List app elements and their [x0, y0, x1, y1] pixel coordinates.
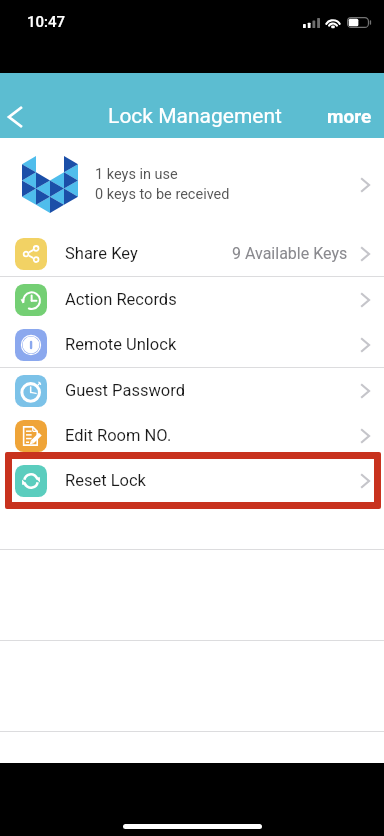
staticText: Action Records	[65, 290, 177, 309]
button[interactable]: 1 keys in use	[0, 138, 384, 231]
button[interactable]: Remote Unlock	[0, 322, 384, 367]
button[interactable]: Share Key	[0, 231, 384, 276]
staticText: Guest Password	[65, 381, 185, 400]
staticText: more	[327, 105, 372, 127]
button[interactable]: Back	[0, 94, 36, 138]
button[interactable]: more	[311, 94, 384, 138]
staticText: 0 keys to be received	[95, 186, 230, 203]
staticText: Lock Management	[108, 104, 282, 129]
staticText: Remote Unlock	[65, 335, 177, 354]
staticText: 10:47	[27, 13, 66, 31]
staticText: 9 Available Keys	[232, 244, 348, 263]
button[interactable]: Reset Lock	[0, 458, 384, 503]
staticText: Reset Lock	[65, 471, 146, 490]
staticText: Edit Room NO.	[65, 426, 172, 445]
button[interactable]: Action Records	[0, 277, 384, 322]
staticText: Share Key	[65, 244, 138, 263]
staticText: 1 keys in use	[95, 166, 178, 183]
button[interactable]: Guest Password	[0, 368, 384, 413]
button[interactable]: Edit Room NO.	[0, 413, 384, 458]
